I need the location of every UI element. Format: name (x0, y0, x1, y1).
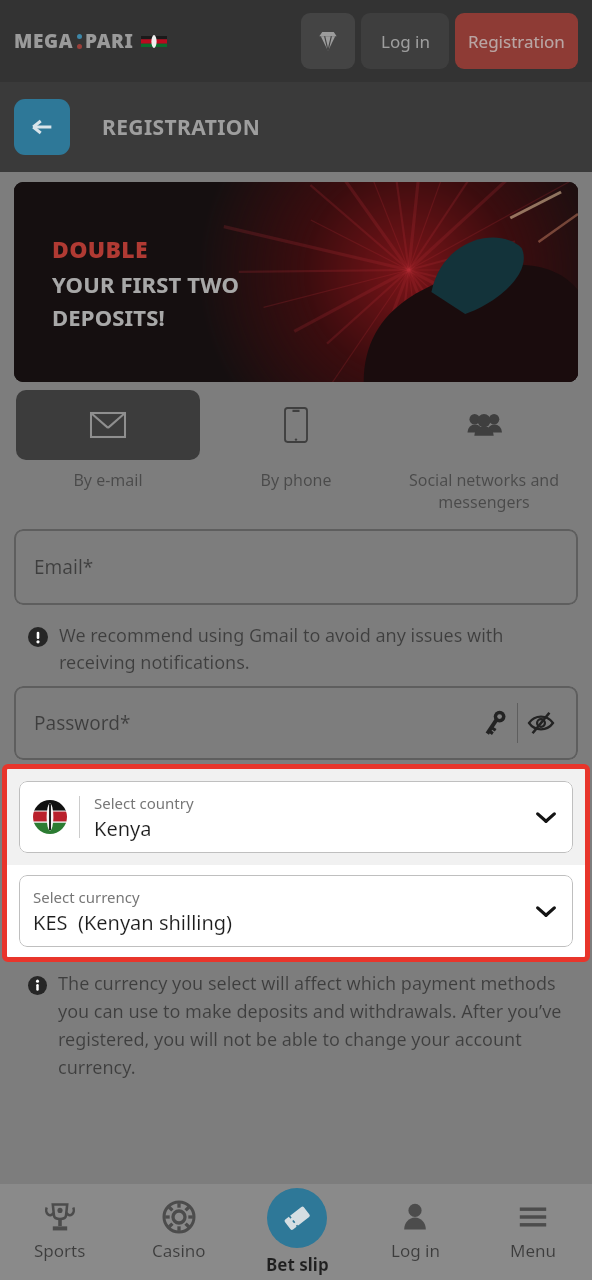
button[interactable]: Menu (474, 1184, 592, 1280)
staticText: Menu (510, 1239, 557, 1262)
button[interactable]: Show password (518, 700, 564, 746)
staticText: Log in (381, 30, 430, 53)
staticText: Password* (34, 710, 131, 736)
staticText: Sports (34, 1239, 86, 1262)
staticText: REGISTRATION (102, 113, 261, 142)
button[interactable]: VIP (301, 13, 355, 69)
button[interactable]: Bet slip (238, 1184, 356, 1280)
button[interactable]: Password* (14, 686, 578, 760)
staticText: Registration (468, 30, 565, 53)
button[interactable]: Back (14, 99, 70, 155)
button[interactable]: Registration (455, 13, 578, 69)
button[interactable]: Select currency (19, 875, 573, 947)
button[interactable]: By e-mail (14, 390, 202, 491)
button[interactable]: DOUBLE (14, 182, 578, 382)
staticText: We recommend using Gmail to avoid any is… (59, 623, 568, 674)
button[interactable]: Log in (361, 13, 449, 69)
button[interactable]: Select country (19, 781, 573, 853)
button[interactable]: Casino (119, 1184, 238, 1280)
staticText: Select currency (33, 887, 140, 907)
button[interactable]: Log in (356, 1184, 474, 1280)
staticText: Log in (391, 1239, 440, 1262)
button[interactable]: By phone (202, 390, 390, 491)
button[interactable]: Sports (0, 1184, 119, 1280)
staticText: Social networks and messengers (392, 469, 576, 513)
staticText: Select country (94, 793, 194, 813)
staticText: MEGA (14, 28, 74, 54)
staticText: Bet slip (266, 1253, 329, 1276)
button[interactable]: Generate password (471, 700, 517, 746)
staticText: KES (Kenyan shilling) (33, 909, 233, 936)
button[interactable]: MEGA (14, 28, 167, 54)
staticText: The currency you select will affect whic… (58, 971, 574, 1079)
staticText: PARI (85, 28, 134, 54)
staticText: By e-mail (16, 469, 200, 491)
staticText: DEPOSITS! (52, 302, 165, 332)
staticText: Email* (34, 554, 94, 580)
staticText: Casino (152, 1239, 206, 1262)
staticText: Kenya (94, 815, 152, 842)
staticText: By phone (204, 469, 388, 491)
staticText: YOUR FIRST TWO (52, 269, 240, 299)
button[interactable]: Email* (14, 529, 578, 605)
staticText: DOUBLE (52, 233, 148, 264)
button[interactable]: Social networks and messengers (390, 390, 578, 513)
